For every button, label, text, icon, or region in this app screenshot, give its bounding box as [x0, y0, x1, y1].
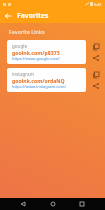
button[interactable]: instagram	[7, 68, 86, 92]
button[interactable]: Recent apps	[76, 198, 88, 210]
button[interactable]: Copy link	[90, 41, 101, 52]
staticText: google	[12, 43, 27, 49]
button[interactable]: Share link	[90, 80, 101, 91]
button[interactable]: google	[7, 40, 86, 64]
button[interactable]: Home	[47, 198, 59, 210]
button[interactable]: Share link	[90, 52, 101, 63]
staticText: https://www.instagram.com/favo.latui	[12, 84, 81, 89]
button[interactable]: Back	[0, 8, 15, 23]
staticText: Favorites	[17, 11, 49, 20]
button[interactable]: Back	[17, 198, 29, 210]
staticText: goolnk.com/ordaNQ	[12, 77, 65, 84]
staticText: https://www.google.com/	[12, 56, 60, 61]
staticText: Favorite Links	[9, 28, 45, 35]
staticText: goolnk.com/p8373	[12, 49, 60, 56]
staticText: 5:43	[94, 2, 102, 7]
button[interactable]: Copy link	[90, 69, 101, 80]
staticText: instagram	[12, 71, 34, 77]
